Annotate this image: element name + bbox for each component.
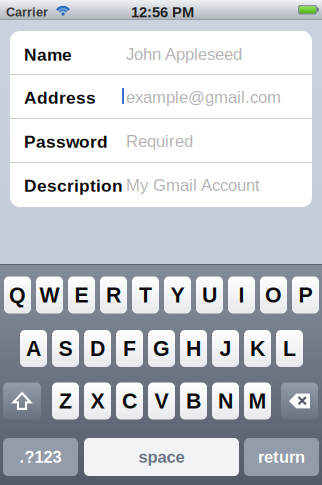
button[interactable]: T	[132, 276, 159, 313]
staticText: O	[265, 283, 282, 307]
button[interactable]: Q	[4, 276, 31, 313]
staticText: R	[106, 283, 121, 307]
button[interactable]: P	[292, 276, 319, 313]
staticText: Description	[24, 176, 123, 195]
button[interactable]: D	[84, 330, 111, 367]
staticText: B	[186, 389, 201, 413]
staticText: Y	[170, 283, 184, 307]
staticText: E	[74, 283, 88, 307]
staticText: D	[90, 337, 105, 360]
staticText: W	[39, 283, 59, 307]
staticText: space	[138, 448, 184, 466]
staticText: M	[248, 389, 266, 413]
staticText: Required	[126, 132, 193, 151]
button[interactable]: X	[84, 382, 111, 419]
staticText: V	[154, 389, 168, 413]
button[interactable]: R	[100, 276, 127, 313]
button[interactable]: return	[244, 438, 319, 476]
button[interactable]: Description	[10, 162, 312, 206]
button[interactable]: N	[212, 382, 239, 419]
staticText: Name	[24, 45, 72, 64]
staticText: J	[219, 337, 231, 360]
staticText: John Appleseed	[126, 45, 242, 64]
staticText: U	[202, 283, 217, 307]
staticText: K	[250, 337, 265, 360]
button[interactable]: M	[244, 382, 271, 419]
staticText: My Gmail Account	[126, 176, 260, 195]
button[interactable]: O	[260, 276, 287, 313]
staticText: I	[238, 283, 244, 307]
staticText: return	[258, 448, 305, 466]
staticText: H	[186, 337, 201, 360]
button[interactable]: J	[212, 330, 239, 367]
button[interactable]: .?123	[3, 438, 78, 476]
button[interactable]: space	[84, 438, 239, 476]
button[interactable]: G	[148, 330, 175, 367]
staticText: T	[139, 283, 152, 307]
button[interactable]: Delete	[281, 382, 318, 419]
button[interactable]: Shift	[3, 382, 41, 419]
staticText: 12:56 PM	[131, 4, 194, 20]
staticText: Address	[24, 88, 96, 107]
button[interactable]: K	[244, 330, 271, 367]
button[interactable]: E	[68, 276, 95, 313]
staticText: S	[58, 337, 72, 360]
staticText: G	[153, 337, 170, 360]
button[interactable]: Name	[10, 31, 312, 75]
button[interactable]: W	[36, 276, 63, 313]
button[interactable]: L	[276, 330, 303, 367]
button[interactable]: A	[20, 330, 47, 367]
button[interactable]: Address	[10, 74, 312, 118]
staticText: example@gmail.com	[126, 88, 281, 107]
staticText: Q	[9, 283, 26, 307]
button[interactable]: Z	[52, 382, 79, 419]
staticText: .?123	[19, 448, 61, 466]
staticText: X	[90, 389, 104, 413]
staticText: P	[298, 283, 312, 307]
button[interactable]: V	[148, 382, 175, 419]
staticText: Z	[59, 389, 72, 413]
staticText: N	[218, 389, 233, 413]
button[interactable]: C	[116, 382, 143, 419]
button[interactable]: B	[180, 382, 207, 419]
button[interactable]: F	[116, 330, 143, 367]
staticText: A	[26, 337, 41, 360]
staticText: Password	[24, 132, 108, 151]
button[interactable]: S	[52, 330, 79, 367]
button[interactable]: Password	[10, 118, 312, 162]
button[interactable]: I	[228, 276, 255, 313]
button[interactable]: Y	[164, 276, 191, 313]
button[interactable]: U	[196, 276, 223, 313]
button[interactable]: H	[180, 330, 207, 367]
staticText: F	[123, 337, 136, 360]
staticText: L	[283, 337, 296, 360]
staticText: Carrier	[6, 5, 48, 19]
staticText: C	[122, 389, 137, 413]
